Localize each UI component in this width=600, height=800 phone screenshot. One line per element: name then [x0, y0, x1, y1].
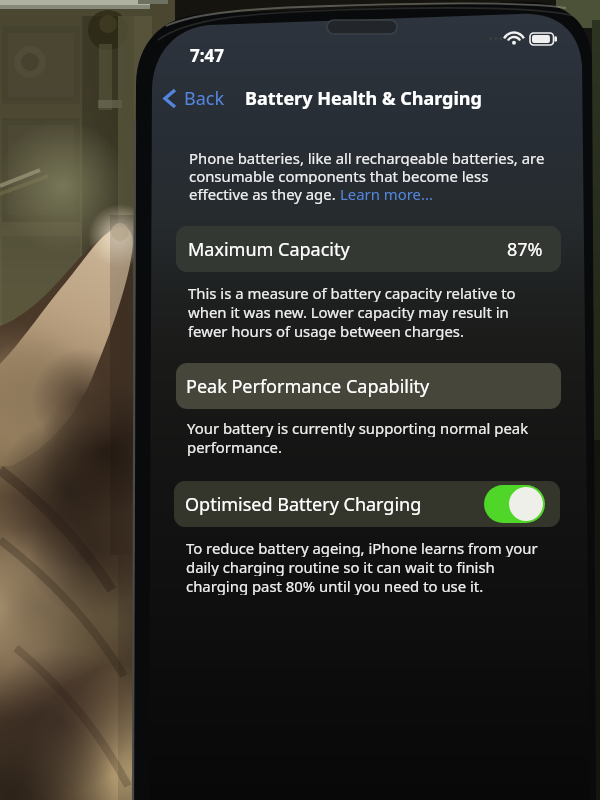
button[interactable]: Peak Performance Capability [176, 363, 561, 409]
button[interactable]: Back [160, 83, 229, 114]
staticText: To reduce battery ageing, iPhone learns … [186, 538, 538, 557]
staticText: consumable components that become less [189, 166, 489, 184]
staticText: when it was new. Lower capacity may resu… [188, 302, 509, 321]
staticText: charging past 80% until you need to use … [186, 576, 484, 595]
staticText: Maximum Capacity [188, 237, 350, 262]
staticText: effective as they age. [189, 184, 340, 204]
staticText: Back [184, 86, 225, 111]
button[interactable]: Optimised Battery Charging toggle [484, 485, 545, 523]
staticText: Phone batteries, like all rechargeable b… [189, 148, 545, 166]
staticText: Optimised Battery Charging [185, 492, 422, 517]
staticText: Battery Health & Charging [245, 86, 482, 111]
staticText: fewer hours of usage between charges. [188, 321, 464, 340]
staticText: 87% [507, 237, 543, 262]
button[interactable]: Optimised Battery Charging [174, 481, 560, 527]
staticText: This is a measure of battery capacity re… [188, 283, 516, 302]
staticText: Learn more... [340, 184, 433, 204]
staticText: Peak Performance Capability [186, 374, 430, 399]
button[interactable]: Maximum Capacity [176, 226, 561, 272]
staticText: Your battery is currently supporting nor… [187, 418, 529, 437]
staticText: daily charging routine so it can wait to… [186, 557, 495, 576]
staticText: performance. [187, 437, 283, 456]
button[interactable]: Learn more... [340, 184, 433, 204]
staticText: 7:47 [190, 44, 224, 67]
